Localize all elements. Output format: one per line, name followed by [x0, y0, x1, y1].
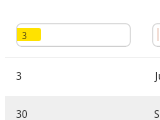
- button[interactable]: 3: [16, 23, 131, 47]
- button[interactable]: 3: [5, 58, 160, 96]
- button[interactable]: 30: [5, 96, 160, 120]
- staticText: Ju: [155, 69, 160, 83]
- staticText: Su: [154, 107, 160, 120]
- staticText: 3: [22, 30, 27, 41]
- button[interactable]: Next cell: [152, 23, 160, 47]
- staticText: 3: [16, 69, 22, 83]
- staticText: 30: [16, 107, 28, 120]
